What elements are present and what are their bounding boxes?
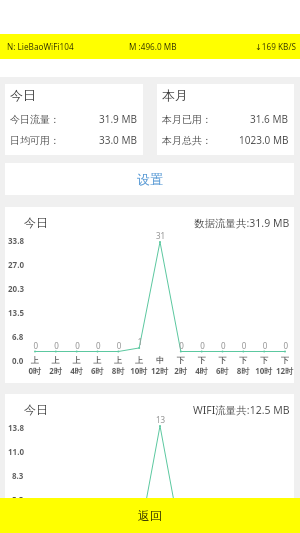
staticText: 设置 bbox=[137, 171, 163, 187]
staticText: 返回 bbox=[138, 508, 162, 523]
staticText: 33.0 MB bbox=[99, 133, 138, 147]
staticText: 今日流量： bbox=[10, 113, 60, 126]
button[interactable]: 设置 bbox=[5, 163, 294, 195]
staticText: N: LieBaoWiFi104 bbox=[7, 41, 74, 52]
staticText: 今日 bbox=[24, 215, 48, 230]
button[interactable]: 返回 bbox=[0, 498, 300, 533]
staticText: 本月 bbox=[162, 87, 188, 103]
staticText: 31.6 MB bbox=[250, 112, 289, 126]
staticText: 日均可用： bbox=[10, 134, 60, 147]
staticText: 31.9 MB bbox=[99, 112, 138, 126]
staticText: 本月已用： bbox=[162, 113, 212, 126]
staticText: ↓169 KB/S bbox=[255, 41, 296, 52]
staticText: WIFI流量共:12.5 MB bbox=[193, 403, 290, 417]
staticText: 本月总共： bbox=[162, 134, 212, 147]
staticText: 1023.0 MB bbox=[239, 133, 289, 147]
staticText: M :496.0 MB bbox=[129, 41, 177, 52]
staticText: 今日 bbox=[10, 87, 36, 103]
staticText: 数据流量共:31.9 MB bbox=[194, 216, 290, 230]
staticText: 今日 bbox=[24, 402, 48, 417]
